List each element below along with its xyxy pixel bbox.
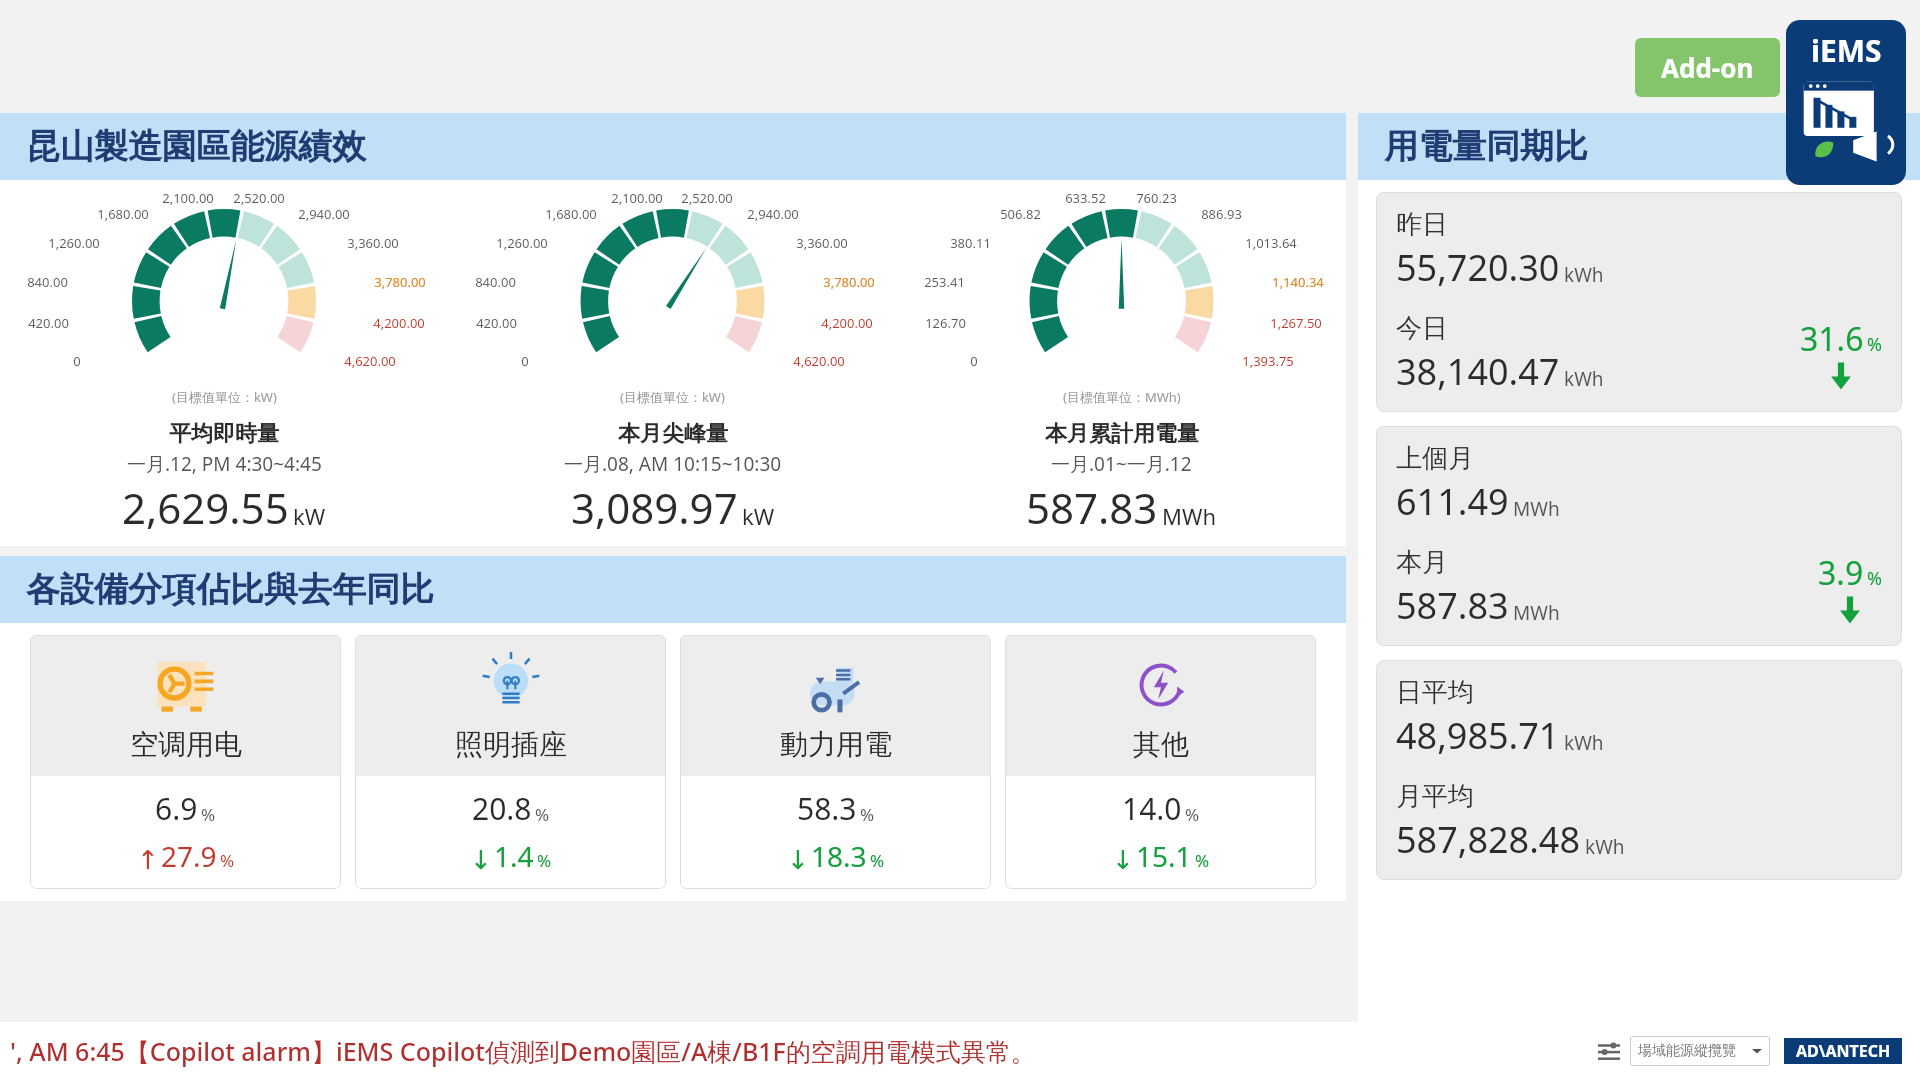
staticText: ↓ [1112,845,1134,875]
staticText: 1,680.00 [97,205,149,223]
staticText: 886.93 [1201,205,1242,223]
staticText: kWh [1564,366,1604,392]
staticText: 1,680.00 [545,205,597,223]
staticText: 3.9 [1818,551,1864,595]
staticText: 空调用电 [130,727,242,762]
staticText: 587.83 [1026,479,1158,536]
staticText: 27.9 [161,837,217,875]
staticText: 506.82 [1000,205,1041,223]
staticText: 1.4 [494,837,534,875]
button[interactable]: 動力用電 [680,635,991,889]
staticText: 4,620.00 [793,352,845,370]
staticText: 2,100.00 [162,189,214,207]
staticText: 昆山製造園區能源績效 [26,125,366,168]
staticText: 日平均 [1396,676,1474,709]
staticText: AD\ANTECH [1796,1040,1891,1062]
staticText: 本月 [1396,546,1448,579]
button[interactable]: ADVANTECH [1784,1038,1902,1064]
staticText: % [535,803,550,826]
staticText: 各設備分項佔比與去年同比 [26,568,434,611]
button[interactable]: 場域能源縱攬覽 [1630,1036,1770,1066]
staticText: % [860,803,875,826]
staticText: kWh [1564,730,1604,756]
staticText: 4,200.00 [821,314,873,332]
staticText: 3,089.97 [571,479,738,536]
staticText: 4,620.00 [344,352,396,370]
staticText: 840.00 [27,273,68,291]
staticText: 3,780.00 [374,273,426,291]
staticText: 1,260.00 [48,234,100,252]
staticText: 31.6 [1800,317,1864,361]
staticText: 1,013.64 [1245,234,1297,252]
staticText: 場域能源縱攬覽 [1638,1042,1752,1060]
staticText: % [537,849,552,872]
staticText: ↓ [787,845,809,875]
staticText: 58.3 [797,788,857,829]
staticText: kW [293,501,326,531]
staticText: 月平均 [1396,780,1474,813]
button[interactable]: 其他 [1005,635,1316,889]
staticText: ↓ [470,845,492,875]
button[interactable]: 空调用电 [30,635,341,889]
staticText: 本月累計用電量 [1045,420,1199,448]
staticText: 2,520.00 [681,189,733,207]
staticText: 18.3 [811,837,867,875]
staticText: 3,780.00 [823,273,875,291]
staticText: (目標值單位：kW) [620,388,725,406]
staticText: iEMS [1811,30,1882,71]
staticText: 611.49 [1396,477,1509,526]
staticText: 2,100.00 [611,189,663,207]
staticText: 253.41 [924,273,965,291]
staticText: 動力用電 [780,727,892,762]
staticText: 2,940.00 [298,205,350,223]
button[interactable]: 上個月 [1376,426,1902,646]
staticText: 用電量同期比 [1384,125,1588,168]
button[interactable]: 照明插座 [355,635,666,889]
staticText: % [870,849,885,872]
staticText: 15.1 [1136,837,1192,875]
staticText: % [1185,803,1200,826]
staticText: % [220,849,235,872]
staticText: MWh [1513,496,1560,522]
staticText: 20.8 [472,788,532,829]
staticText: % [1867,332,1882,357]
staticText: 平均即時量 [169,420,279,448]
staticText: 照明插座 [455,727,567,762]
button[interactable]: 日平均 [1376,660,1902,880]
staticText: MWh [1513,600,1560,626]
button[interactable]: iEMS [1786,20,1906,185]
staticText: 1,260.00 [496,234,548,252]
staticText: kWh [1564,262,1604,288]
staticText: 1,140.34 [1272,273,1324,291]
staticText: ', AM 6:45【Copilot alarm】iEMS Copilot偵測到… [10,1034,1594,1068]
staticText: 今日 [1396,312,1448,345]
staticText: 587.83 [1396,581,1509,630]
staticText: 3,360.00 [347,234,399,252]
staticText: 上個月 [1396,442,1474,475]
staticText: 48,985.71 [1396,711,1560,760]
staticText: (目標值單位：MWh) [1063,388,1181,406]
staticText: kW [742,501,775,531]
staticText: 本月尖峰量 [618,420,728,448]
staticText: % [201,803,216,826]
staticText: 一月.08, AM 10:15~10:30 [564,451,782,477]
staticText: 昨日 [1396,208,1448,241]
button[interactable]: 昨日 [1376,192,1902,412]
button[interactable]: Add-on [1635,38,1780,97]
staticText: % [1195,849,1210,872]
staticText: 126.70 [925,314,966,332]
staticText: 一月.12, PM 4:30~4:45 [127,451,322,477]
staticText: 840.00 [475,273,516,291]
staticText: 0 [73,352,81,370]
staticText: 2,629.55 [122,479,289,536]
staticText: 2,940.00 [747,205,799,223]
staticText: 420.00 [28,314,69,332]
staticText: 420.00 [476,314,517,332]
staticText: 一月.01~一月.12 [1051,451,1192,477]
staticText: 6.9 [155,788,198,829]
button[interactable]: Filter [1594,1036,1624,1066]
staticText: % [1867,566,1882,591]
staticText: 0 [970,352,978,370]
staticText: 38,140.47 [1396,347,1560,396]
staticText: Add-on [1661,50,1754,85]
